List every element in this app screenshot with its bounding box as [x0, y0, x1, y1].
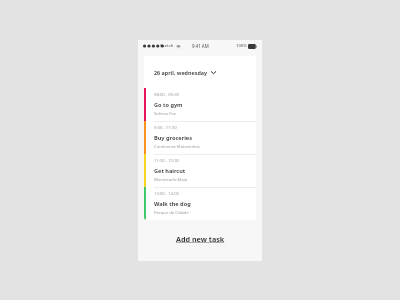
- staticText: Go to gym: [154, 101, 183, 109]
- staticText: Add new task: [176, 234, 225, 244]
- button[interactable]: Add new task: [166, 231, 235, 247]
- button[interactable]: 13:00 - 14:00: [144, 187, 256, 220]
- button[interactable]: 08:00 - 09:30: [144, 88, 256, 121]
- button[interactable]: 11:30 - 12:30: [144, 154, 256, 187]
- staticText: Walk the dog: [154, 200, 191, 208]
- staticText: 9:41 AM: [192, 43, 209, 49]
- staticText: Sketch: [160, 43, 174, 49]
- staticText: 100%: [236, 43, 247, 49]
- staticText: 9:30 - 11:30: [154, 125, 177, 131]
- button[interactable]: 9:30 - 11:30: [144, 121, 256, 154]
- staticText: Buy groceries: [154, 134, 192, 142]
- staticText: Solinca Foz: [154, 111, 176, 117]
- button[interactable]: 26 april, wednesday: [144, 56, 256, 88]
- staticText: Get haircut: [154, 167, 186, 175]
- staticText: 13:00 - 14:00: [154, 191, 179, 197]
- staticText: 26 april, wednesday: [154, 69, 208, 76]
- staticText: 11:30 - 12:30: [154, 158, 179, 164]
- staticText: Continente Matosinhos: [154, 144, 200, 150]
- staticText: Montecarlo Maia: [154, 177, 188, 183]
- staticText: Parque da Cidade: [154, 210, 189, 216]
- staticText: 08:00 - 09:30: [154, 92, 179, 98]
